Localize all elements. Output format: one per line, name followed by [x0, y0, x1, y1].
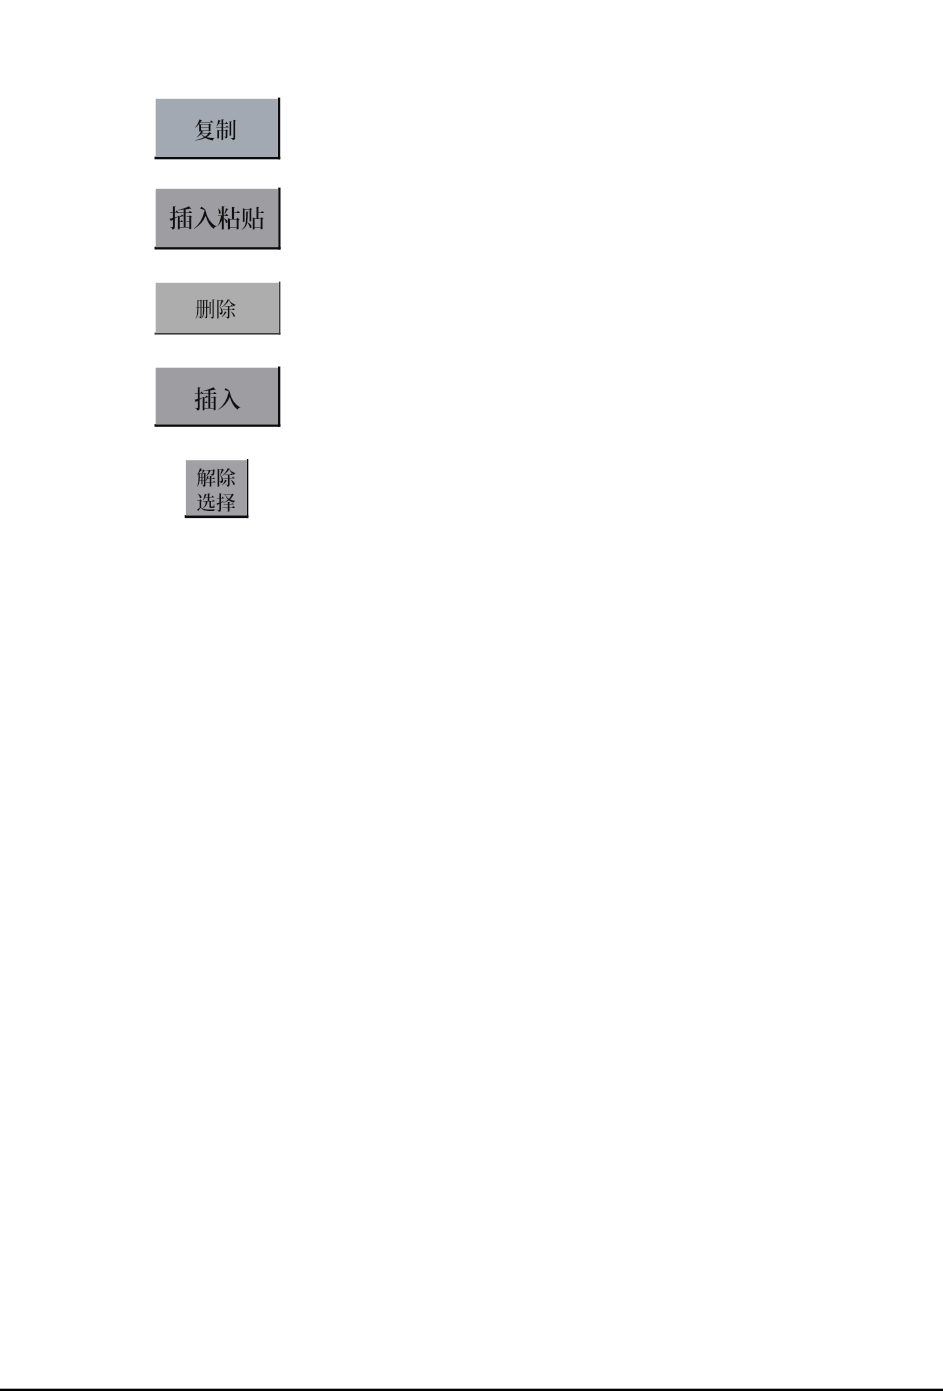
staticText: 删除 [195, 293, 236, 322]
button[interactable]: Delete [156, 283, 279, 333]
staticText: 插入粘贴 [169, 199, 265, 233]
button[interactable]: Insert paste [156, 189, 279, 247]
button[interactable]: Deselect [186, 460, 247, 515]
staticText: 解除 选择 [196, 462, 236, 515]
button[interactable]: Copy [156, 99, 278, 157]
staticText: 复制 [194, 113, 237, 144]
staticText: 插入 [194, 381, 241, 415]
button[interactable]: Insert [156, 368, 278, 425]
